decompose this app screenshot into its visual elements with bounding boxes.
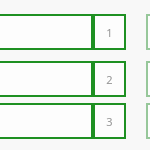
button[interactable]: 2 xyxy=(0,61,126,97)
staticText: 3 xyxy=(106,114,113,129)
staticText: 2 xyxy=(106,72,113,87)
button[interactable] xyxy=(146,61,150,97)
button[interactable] xyxy=(0,61,93,97)
button[interactable]: 1 xyxy=(93,14,126,50)
button[interactable] xyxy=(0,14,93,50)
button[interactable] xyxy=(146,103,150,139)
button[interactable]: 1 xyxy=(0,14,126,50)
button[interactable] xyxy=(146,14,150,50)
button[interactable]: 3 xyxy=(93,103,126,139)
button[interactable] xyxy=(0,103,93,139)
button[interactable]: 3 xyxy=(0,103,126,139)
staticText: 1 xyxy=(106,25,113,40)
button[interactable]: 2 xyxy=(93,61,126,97)
